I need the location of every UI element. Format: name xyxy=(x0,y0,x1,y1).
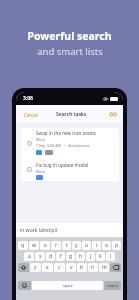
staticText: n xyxy=(91,264,95,271)
staticText: Attachments xyxy=(68,143,90,148)
button[interactable]: t xyxy=(62,241,71,250)
staticText: w xyxy=(32,242,36,249)
button[interactable]: c xyxy=(54,263,65,272)
staticText: c xyxy=(58,264,61,271)
button[interactable]: Filters xyxy=(105,108,123,119)
staticText: j xyxy=(90,253,92,260)
button[interactable]: v xyxy=(66,263,76,272)
button[interactable]: o xyxy=(102,241,111,250)
button[interactable]: j xyxy=(86,252,95,261)
button[interactable]: q xyxy=(18,241,28,250)
button[interactable]: y xyxy=(72,241,81,250)
staticText: in:work label:p0 xyxy=(20,227,58,234)
staticText: Cancel xyxy=(24,112,39,118)
staticText: Search tasks xyxy=(56,111,87,118)
staticText: g xyxy=(69,253,73,260)
staticText: u xyxy=(85,242,89,249)
staticText: Work xyxy=(36,137,45,142)
staticText: return xyxy=(107,283,119,288)
staticText: 3:06 xyxy=(23,95,33,102)
button[interactable]: p xyxy=(112,241,121,250)
staticText: y xyxy=(75,242,78,249)
staticText: o xyxy=(105,242,109,249)
button[interactable]: Fix bug in update modal xyxy=(21,160,119,181)
staticText: b xyxy=(80,264,84,271)
other: Emoji xyxy=(22,283,27,288)
button[interactable]: f xyxy=(56,252,65,261)
staticText: v xyxy=(70,264,73,271)
staticText: i xyxy=(96,242,98,249)
staticText: e xyxy=(44,242,47,249)
staticText: a xyxy=(28,253,31,260)
button[interactable]: return xyxy=(104,281,121,290)
staticText: d xyxy=(49,253,53,260)
button[interactable]: z xyxy=(30,263,41,272)
button[interactable]: u xyxy=(82,241,91,250)
staticText: s xyxy=(39,253,42,260)
button[interactable]: Cancel xyxy=(16,108,43,120)
button[interactable]: Shift xyxy=(18,263,29,272)
staticText: space xyxy=(63,283,73,288)
button[interactable]: i xyxy=(92,241,101,250)
staticText: Fix bug in update modal xyxy=(36,162,89,168)
button[interactable]: m xyxy=(99,263,109,272)
button[interactable]: w xyxy=(29,241,39,250)
other: Shift xyxy=(21,265,26,270)
staticText: and smart lists xyxy=(37,45,103,58)
button[interactable]: h xyxy=(76,252,85,261)
button[interactable]: Backspace xyxy=(110,263,121,272)
button[interactable]: s xyxy=(35,252,45,261)
button[interactable]: b xyxy=(77,263,87,272)
staticText: p xyxy=(115,242,119,249)
button[interactable]: l xyxy=(106,252,115,261)
button[interactable]: n xyxy=(88,263,98,272)
button[interactable]: space xyxy=(32,281,103,290)
button[interactable]: e xyxy=(40,241,50,250)
staticText: x xyxy=(46,264,49,271)
staticText: q xyxy=(21,242,25,249)
staticText: h xyxy=(79,253,83,260)
button[interactable]: r xyxy=(51,241,61,250)
staticText: f xyxy=(60,253,62,260)
staticText: k xyxy=(99,253,102,260)
button[interactable]: x xyxy=(42,263,53,272)
button[interactable]: d xyxy=(46,252,55,261)
staticText: Powerful search xyxy=(27,29,112,43)
button[interactable]: Swap in the new icon assets xyxy=(21,128,119,158)
staticText: Work xyxy=(36,169,45,174)
other: Backspace xyxy=(113,265,119,270)
staticText: m xyxy=(102,264,107,271)
staticText: 7 Sep, 9:00 AM xyxy=(36,143,61,148)
staticText: z xyxy=(34,264,37,271)
staticText: t xyxy=(66,242,68,249)
staticText: l xyxy=(110,253,112,260)
staticText: Swap in the new icon assets xyxy=(36,130,97,136)
button[interactable]: a xyxy=(24,252,34,261)
button[interactable]: k xyxy=(96,252,105,261)
staticText: r xyxy=(55,242,58,249)
button[interactable]: Emoji xyxy=(18,281,31,290)
button[interactable]: g xyxy=(66,252,75,261)
